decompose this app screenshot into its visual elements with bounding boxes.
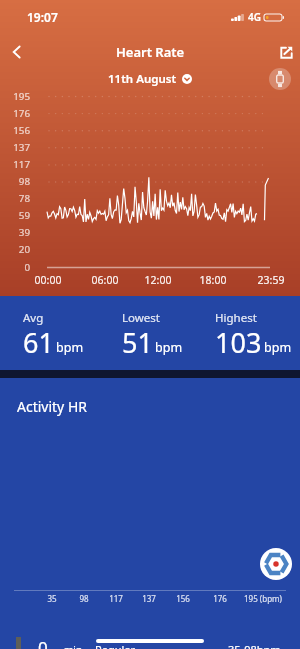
button[interactable]: Highest: [215, 296, 300, 370]
staticText: 39: [0, 226, 30, 239]
button[interactable]: Back: [2, 38, 30, 66]
staticText: 12:00: [138, 273, 178, 287]
staticText: Regular: [95, 642, 136, 649]
staticText: bpm: [56, 339, 84, 356]
staticText: bpm: [155, 339, 183, 356]
staticText: 176: [0, 107, 30, 120]
staticText: 78: [0, 192, 30, 205]
staticText: 176: [195, 593, 245, 604]
button[interactable]: Lowest: [122, 296, 300, 370]
staticText: 0: [0, 261, 30, 274]
staticText: 59: [0, 209, 30, 222]
staticText: bpm: [264, 339, 292, 356]
staticText: Heart Rate: [116, 43, 185, 61]
staticText: 98: [0, 175, 30, 188]
staticText: 20: [0, 243, 30, 256]
staticText: 0: [38, 636, 48, 649]
staticText: 51: [122, 324, 153, 361]
button[interactable]: Share: [272, 38, 300, 66]
button[interactable]: Connected watch: [266, 66, 294, 92]
staticText: 00:00: [28, 273, 68, 287]
staticText: Activity HR: [17, 397, 87, 416]
staticText: 195: [0, 90, 30, 103]
staticText: 18:00: [193, 273, 233, 287]
staticText: 61: [23, 324, 54, 361]
staticText: 4G: [248, 10, 261, 24]
staticText: 35-98bpm: [228, 642, 281, 649]
staticText: 98: [59, 593, 109, 604]
button[interactable]: 11th August: [108, 71, 192, 87]
staticText: 35: [27, 593, 77, 604]
staticText: 137: [124, 593, 174, 604]
staticText: 156: [0, 124, 30, 137]
staticText: 19:07: [27, 9, 58, 25]
staticText: 11th August: [108, 71, 177, 87]
staticText: min: [64, 643, 83, 649]
staticText: 156: [158, 593, 208, 604]
staticText: Lowest: [122, 310, 160, 326]
staticText: 23:59: [251, 273, 291, 287]
staticText: 137: [0, 141, 30, 154]
staticText: 06:00: [85, 273, 125, 287]
button[interactable]: Avg: [23, 296, 300, 370]
staticText: Highest: [215, 310, 257, 326]
staticText: 117: [91, 593, 141, 604]
staticText: Avg: [23, 310, 44, 326]
staticText: 117: [0, 158, 30, 171]
staticText: 195 (bpm): [238, 593, 288, 604]
staticText: 103: [215, 324, 262, 361]
